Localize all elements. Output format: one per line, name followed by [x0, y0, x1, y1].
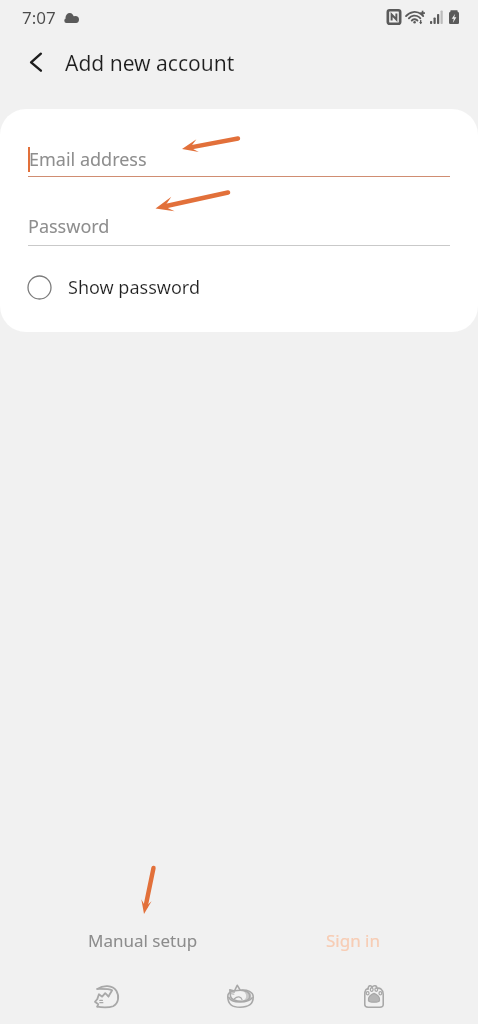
staticText: 7:07: [22, 6, 56, 29]
staticText: Manual setup: [88, 929, 198, 952]
staticText: Show password: [68, 275, 200, 300]
button[interactable]: Recent apps: [350, 972, 398, 1020]
button[interactable]: Manual setup: [40, 922, 245, 958]
button[interactable]: Home: [216, 972, 264, 1020]
staticText: Password: [28, 214, 110, 239]
staticText: Sign in: [326, 929, 380, 952]
button[interactable]: Show password: [22, 269, 200, 305]
staticText: Email address: [29, 147, 147, 172]
button[interactable]: Back: [83, 972, 131, 1020]
staticText: Add new account: [65, 49, 235, 78]
button[interactable]: Back: [13, 39, 59, 85]
button[interactable]: Sign in: [265, 922, 440, 958]
